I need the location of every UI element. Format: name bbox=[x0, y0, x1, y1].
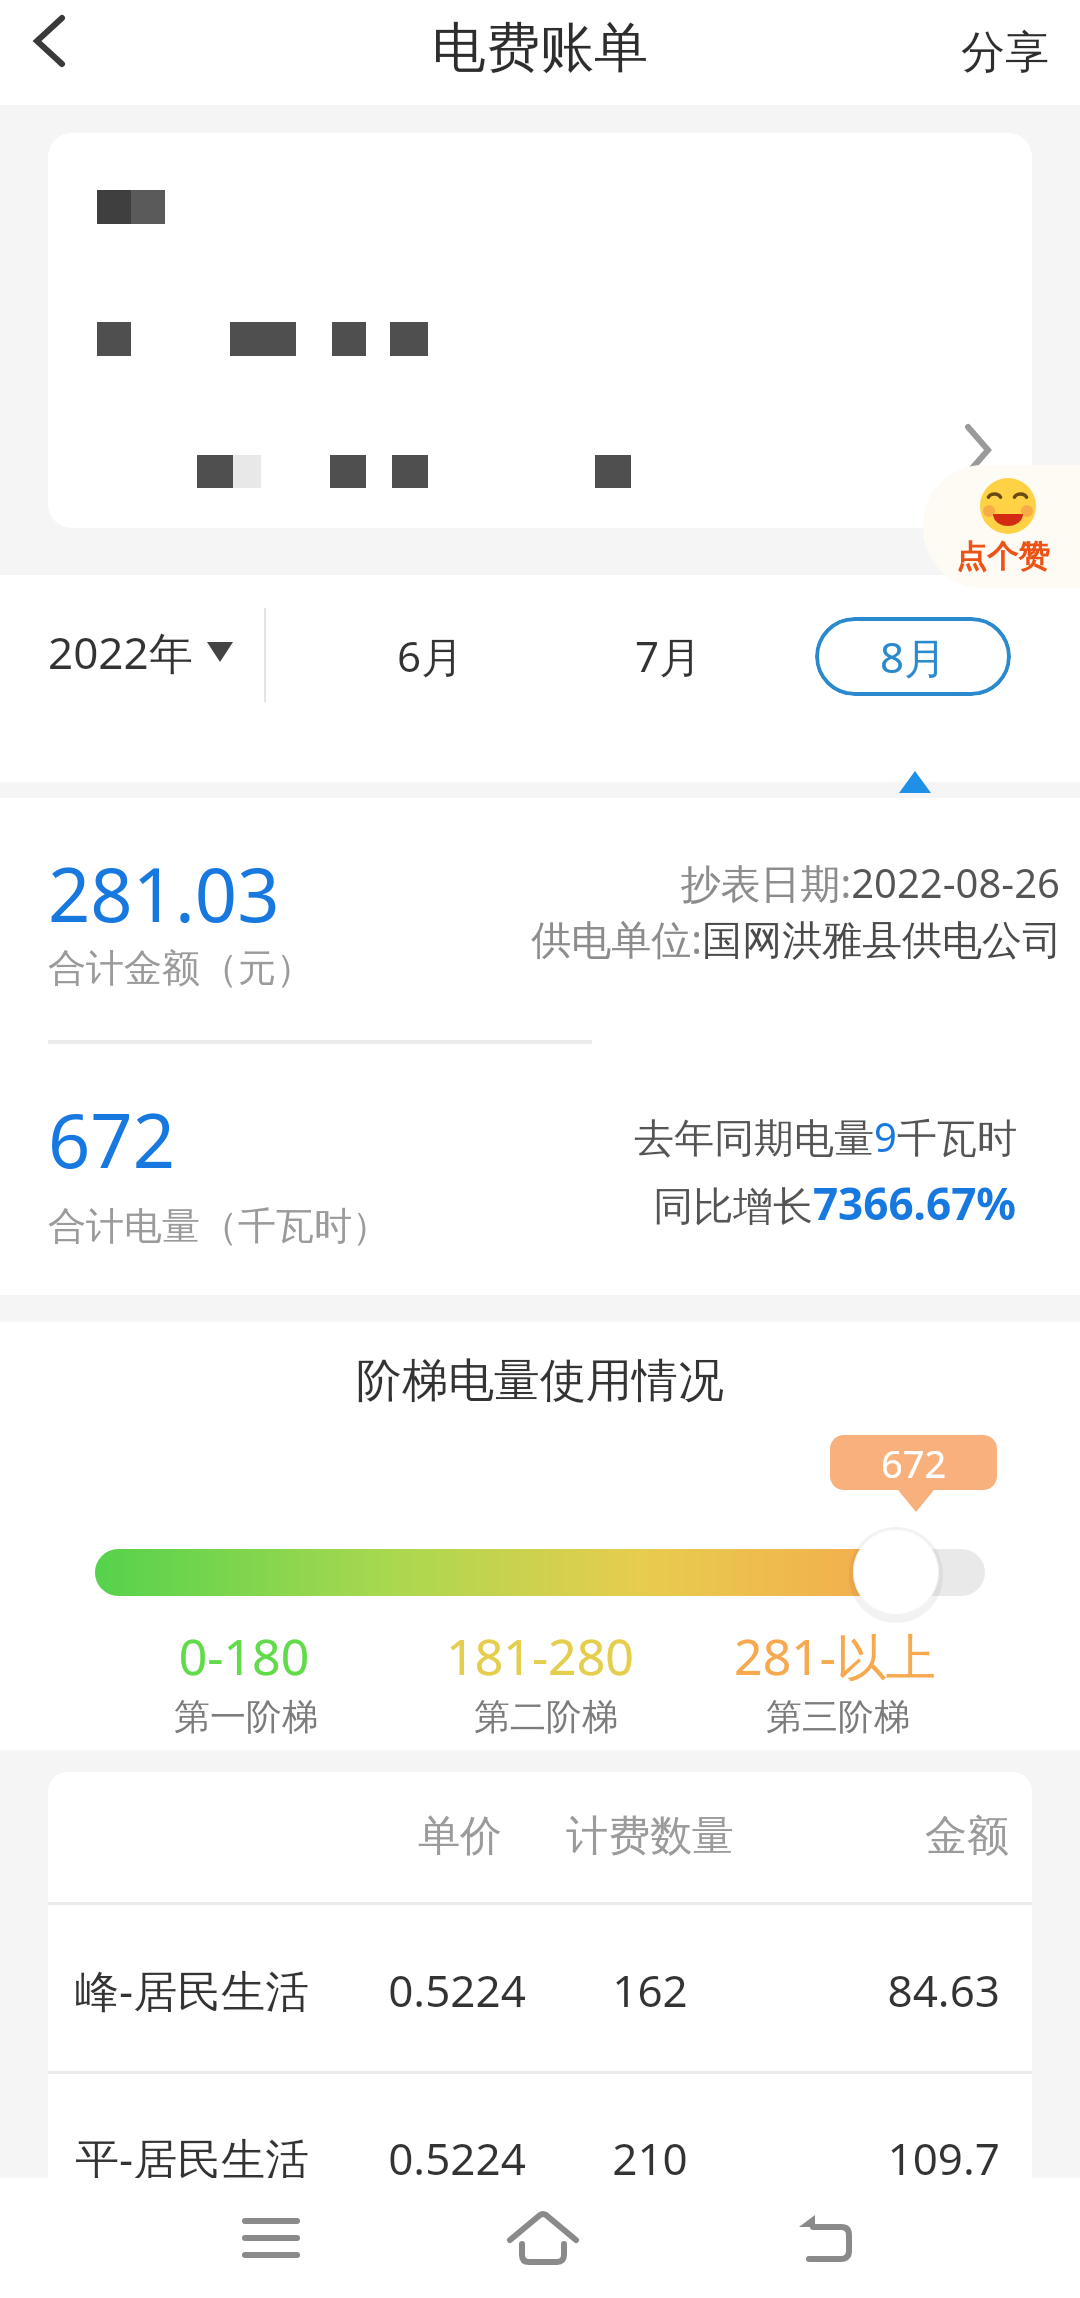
staticText: 分享 bbox=[961, 25, 1049, 80]
staticText: 平-居民生活 bbox=[75, 2128, 310, 2188]
staticText: 抄表日期:2022-08-26 bbox=[0, 855, 1060, 910]
button[interactable]: 点个赞 bbox=[923, 465, 1080, 588]
button[interactable] bbox=[48, 133, 1032, 528]
staticText: 金额 bbox=[867, 1810, 1032, 1863]
staticText: 峰-居民生活 bbox=[75, 1960, 310, 2020]
staticText: 合计金额（元） bbox=[48, 944, 314, 992]
staticText: 84.63 bbox=[800, 1960, 1000, 2020]
button[interactable] bbox=[211, 2178, 331, 2298]
button[interactable]: 2022年 bbox=[48, 622, 233, 682]
staticText: 第三阶梯 bbox=[738, 1694, 938, 1739]
button[interactable]: 分享 bbox=[930, 0, 1080, 105]
button[interactable] bbox=[853, 1529, 939, 1615]
staticText: 合计电量（千瓦时） bbox=[48, 1202, 390, 1250]
button[interactable] bbox=[10, 0, 100, 105]
staticText: 6月 bbox=[397, 627, 464, 684]
button[interactable]: 6月 bbox=[370, 600, 490, 710]
staticText: 0.5224 bbox=[357, 1960, 557, 2020]
staticText: 281-以上 bbox=[715, 1622, 955, 1690]
staticText: 单价 bbox=[360, 1810, 560, 1863]
staticText: 同比增长7366.67% bbox=[0, 1173, 1016, 1233]
staticText: 281.03 bbox=[48, 843, 280, 944]
button[interactable] bbox=[483, 2178, 603, 2298]
button[interactable] bbox=[767, 2178, 887, 2298]
staticText: 点个赞 bbox=[956, 537, 1049, 576]
staticText: 210 bbox=[550, 2128, 750, 2188]
staticText: 第一阶梯 bbox=[146, 1694, 346, 1739]
staticText: 162 bbox=[550, 1960, 750, 2020]
staticText: 7月 bbox=[635, 627, 702, 684]
staticText: 2022年 bbox=[48, 622, 193, 682]
staticText: 计费数量 bbox=[550, 1810, 750, 1863]
button[interactable]: 7月 bbox=[608, 600, 728, 710]
staticText: 672 bbox=[881, 1437, 947, 1489]
staticText: 0.5224 bbox=[357, 2128, 557, 2188]
staticText: 109.7 bbox=[800, 2128, 1000, 2188]
staticText: 第二阶梯 bbox=[446, 1694, 646, 1739]
staticText: 181-280 bbox=[420, 1622, 660, 1690]
staticText: 电费账单 bbox=[0, 14, 1080, 82]
staticText: 672 bbox=[48, 1089, 175, 1190]
staticText: 阶梯电量使用情况 bbox=[0, 1352, 1080, 1410]
staticText: 供电单位:国网洪雅县供电公司 bbox=[0, 911, 1062, 966]
staticText: 8月 bbox=[880, 628, 947, 685]
button[interactable]: 8月 bbox=[815, 617, 1011, 696]
staticText: 0-180 bbox=[144, 1622, 344, 1690]
staticText: 去年同期电量9千瓦时 bbox=[0, 1109, 1017, 1164]
